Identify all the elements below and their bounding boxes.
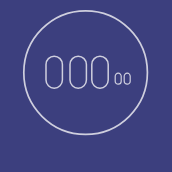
button[interactable]: Stopwatch [0, 0, 172, 172]
